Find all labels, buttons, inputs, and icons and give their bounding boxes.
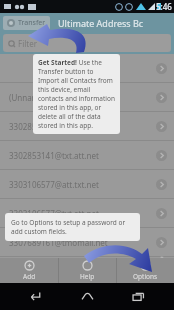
staticText: Go to Options to setup a password or add… (11, 218, 134, 236)
staticText: Options (133, 272, 158, 281)
button[interactable]: 3302853141@txt.att.net (0, 112, 174, 140)
button[interactable]: Home (72, 283, 102, 310)
staticText: Add (23, 272, 36, 281)
staticText: Get Started! Use the Transfer button to … (38, 58, 115, 130)
staticText: 3303106577@att.txt.net (9, 179, 99, 190)
staticText: 3302853141@txt.att.net (9, 150, 99, 161)
button[interactable]: Get Started! Use the Transfer button to … (33, 54, 120, 134)
staticText: Transfer (18, 18, 46, 28)
button[interactable]: Help (59, 258, 116, 283)
button[interactable]: 3302853141@txt.att.net (0, 141, 174, 169)
button[interactable]: Add (0, 258, 58, 283)
staticText: 3302853141@txt.att.net (9, 121, 99, 132)
button[interactable]: Recent apps (123, 283, 153, 310)
button[interactable]: Filter (3, 34, 171, 52)
staticText: Help (80, 272, 95, 281)
button[interactable]: Go to Options to setup a password or add… (5, 213, 140, 241)
button[interactable]: (Unnamed) (0, 83, 174, 111)
button[interactable]: Options (117, 258, 174, 283)
button[interactable]: Transfer (3, 16, 50, 30)
staticText: 3307689161@tmomail.net (9, 237, 108, 248)
staticText: Filter (18, 38, 37, 49)
button[interactable]: 3303106577@txt.att.net (0, 199, 174, 227)
staticText: 3303106577@txt.att.net (9, 208, 99, 219)
button[interactable]: 3303106577@att.txt.net (0, 170, 174, 198)
staticText: Ultimate Address Bc (58, 17, 144, 29)
button[interactable]: 3307689161@tmomail.net (0, 228, 174, 256)
staticText: 5:46 (156, 1, 172, 12)
button[interactable] (0, 257, 174, 258)
staticText: (Unnamed) (9, 92, 51, 103)
button[interactable]: Back (21, 283, 51, 310)
button[interactable] (0, 54, 174, 82)
